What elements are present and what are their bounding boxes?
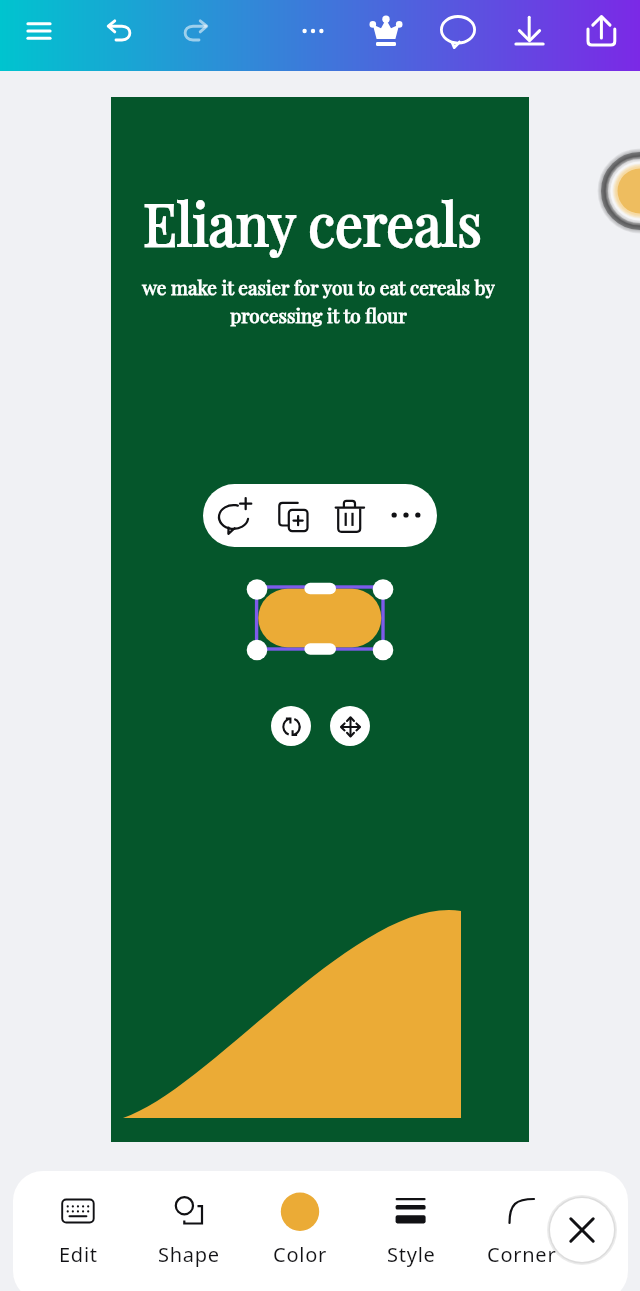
- button[interactable]: Rotate: [271, 706, 311, 746]
- button[interactable]: Corner: [467, 1186, 577, 1278]
- staticText: Edit: [59, 1241, 98, 1268]
- staticText: we make it easier for you to eat cereals…: [142, 274, 495, 328]
- button[interactable]: Menu: [17, 9, 61, 53]
- staticText: Shape: [158, 1241, 220, 1268]
- button[interactable]: Comments: [435, 9, 479, 53]
- button[interactable]: Download: [508, 9, 552, 53]
- button[interactable]: Delete: [322, 487, 378, 543]
- button[interactable]: More options: [378, 487, 434, 543]
- button[interactable]: Share: [579, 9, 623, 53]
- button[interactable]: Edit: [23, 1186, 133, 1278]
- button[interactable]: Move: [330, 706, 370, 746]
- button[interactable]: More options: [291, 9, 335, 53]
- staticText: Corner: [487, 1241, 557, 1268]
- button[interactable]: Close: [546, 1194, 618, 1266]
- staticText: Color: [273, 1241, 328, 1268]
- button[interactable]: Add comment: [206, 487, 262, 543]
- staticText: Eliany cereals: [143, 181, 482, 260]
- button[interactable]: Upgrade to Pro: [364, 9, 408, 53]
- button[interactable]: Redo: [174, 9, 218, 53]
- button[interactable]: Shape: [134, 1186, 244, 1278]
- button[interactable]: Style: [356, 1186, 466, 1278]
- staticText: Style: [387, 1241, 436, 1268]
- button[interactable]: Duplicate: [264, 487, 320, 543]
- button[interactable]: Undo: [97, 9, 141, 53]
- button[interactable]: Color: [245, 1186, 355, 1278]
